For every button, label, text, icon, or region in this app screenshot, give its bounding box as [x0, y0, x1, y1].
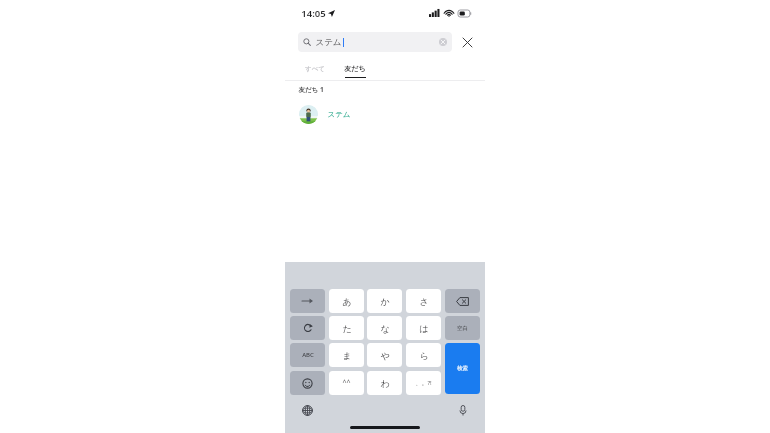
staticText: 友だち	[344, 64, 366, 73]
button[interactable]: ま	[329, 343, 364, 367]
staticText: 14:05	[301, 7, 326, 20]
staticText: ステム	[315, 37, 342, 48]
staticText: ら	[419, 350, 429, 361]
button[interactable]: 友だち	[338, 58, 372, 79]
staticText: さ	[419, 296, 429, 307]
button[interactable]: Next candidate	[290, 289, 325, 313]
staticText: は	[419, 323, 429, 334]
button[interactable]: 空白	[445, 316, 480, 340]
staticText: ^^	[342, 378, 351, 388]
staticText: すべて	[305, 65, 325, 73]
staticText: 友だち 1	[298, 85, 324, 94]
staticText: な	[380, 323, 390, 334]
button[interactable]: わ	[367, 371, 402, 395]
staticText: や	[380, 350, 390, 361]
staticText: た	[342, 323, 352, 334]
button[interactable]: や	[367, 343, 402, 367]
button[interactable]: Undo	[290, 316, 325, 340]
staticText: 空白	[457, 325, 468, 332]
button[interactable]: すべて	[298, 58, 332, 79]
button[interactable]: ^^	[329, 371, 364, 395]
button[interactable]: ら	[406, 343, 441, 367]
button[interactable]: Delete	[445, 289, 480, 313]
button[interactable]: た	[329, 316, 364, 340]
staticText: わ	[380, 378, 390, 389]
button[interactable]: ABC	[290, 343, 325, 367]
button[interactable]: Emoji keyboard	[290, 371, 325, 395]
button[interactable]: 検索	[445, 343, 480, 394]
staticText: か	[380, 296, 390, 307]
staticText: あ	[342, 296, 352, 307]
button[interactable]: ステム	[285, 100, 485, 128]
button[interactable]: Close search	[459, 34, 475, 50]
staticText: ABC	[302, 351, 314, 359]
button[interactable]: Clear text	[439, 38, 447, 46]
button[interactable]: 、。?!	[406, 371, 441, 395]
button[interactable]: あ	[329, 289, 364, 313]
staticText: ステム	[327, 110, 351, 119]
button[interactable]: Voice input	[455, 402, 471, 418]
staticText: 、。?!	[415, 379, 432, 387]
button[interactable]: ステム	[298, 32, 452, 52]
button[interactable]: さ	[406, 289, 441, 313]
staticText: 検索	[457, 365, 468, 372]
button[interactable]: か	[367, 289, 402, 313]
staticText: ま	[342, 350, 352, 361]
button[interactable]: Switch keyboard language	[299, 402, 315, 418]
button[interactable]: は	[406, 316, 441, 340]
button[interactable]: な	[367, 316, 402, 340]
